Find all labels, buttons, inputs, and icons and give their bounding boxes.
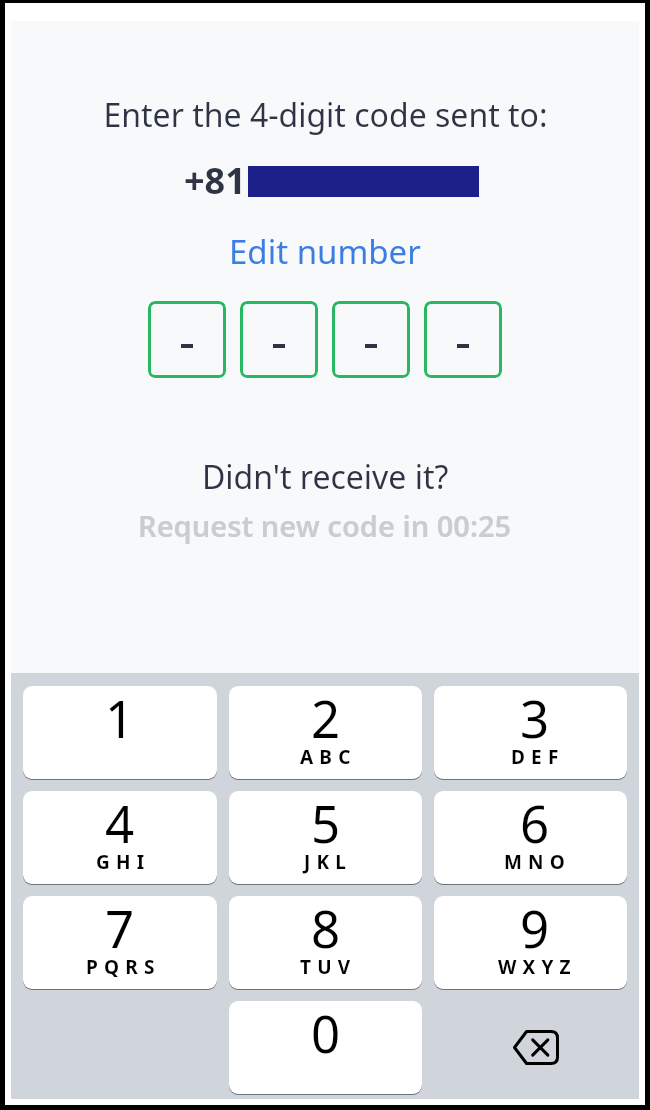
staticText: PQRS (86, 954, 161, 980)
button[interactable] (240, 301, 318, 378)
button[interactable]: 7 (23, 896, 217, 989)
staticText: 5 (311, 791, 341, 857)
staticText: MNO (504, 849, 571, 875)
staticText: 3 (520, 686, 550, 752)
button[interactable]: 1 (23, 686, 217, 779)
button[interactable] (332, 301, 410, 378)
button[interactable] (148, 301, 226, 378)
button[interactable]: 5 (229, 791, 422, 884)
staticText: 0 (311, 1001, 341, 1067)
staticText: 2 (311, 686, 341, 752)
staticText: Request new code in 00:25 (138, 506, 512, 545)
staticText: GHI (96, 849, 151, 875)
button[interactable]: 4 (23, 791, 217, 884)
button[interactable] (424, 301, 502, 378)
staticText: TUV (300, 954, 357, 980)
button[interactable]: 3 (434, 686, 627, 779)
staticText: +81 (184, 156, 246, 205)
staticText: 7 (105, 896, 135, 962)
staticText: Edit number (229, 229, 421, 274)
staticText: 1 (105, 686, 135, 752)
button[interactable]: 6 (434, 791, 627, 884)
staticText: 9 (520, 896, 550, 962)
staticText: 8 (311, 896, 341, 962)
button[interactable]: 8 (229, 896, 422, 989)
staticText: DEF (511, 744, 565, 770)
staticText: JKL (304, 849, 353, 875)
button[interactable]: Backspace (434, 1001, 627, 1094)
staticText: WXYZ (498, 954, 577, 980)
button[interactable]: Edit number (229, 229, 421, 274)
button[interactable]: 0 (229, 1001, 422, 1094)
button[interactable]: 2 (229, 686, 422, 779)
staticText: 4 (105, 791, 135, 857)
staticText: 6 (520, 791, 550, 857)
staticText: ABC (300, 744, 357, 770)
staticText: Enter the 4-digit code sent to: (103, 93, 548, 137)
staticText: Didn't receive it? (202, 455, 449, 499)
button[interactable]: 9 (434, 896, 627, 989)
